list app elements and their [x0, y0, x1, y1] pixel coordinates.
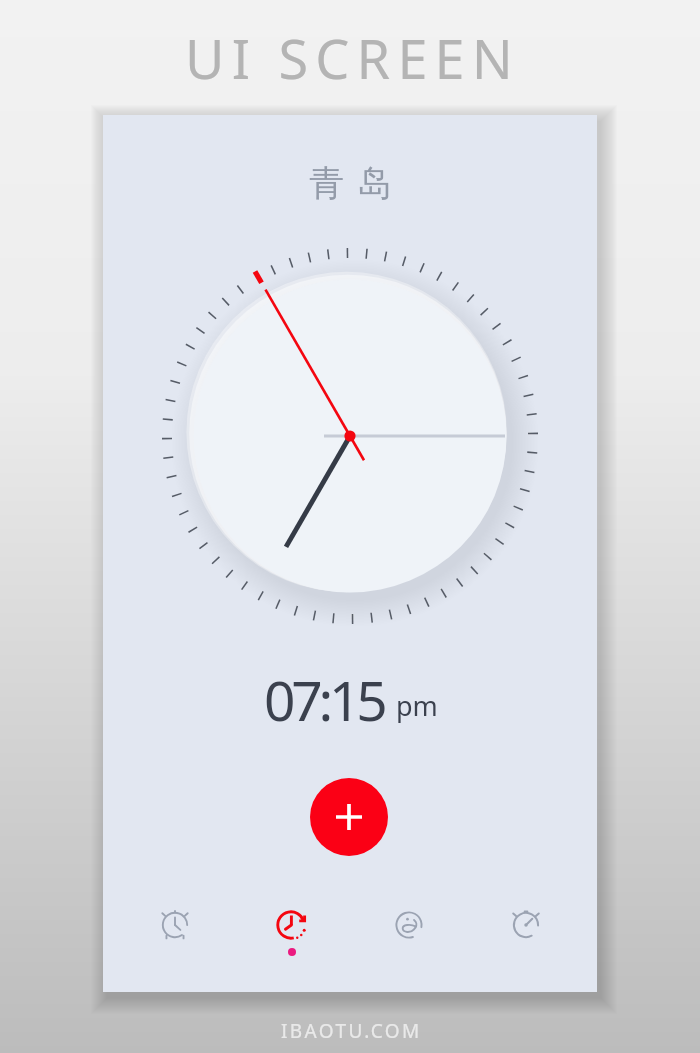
staticText: pm	[396, 687, 438, 724]
staticText: UI SCREEN	[185, 21, 521, 95]
staticText: 07:15	[264, 662, 384, 737]
staticText: IBAOTU.COM	[281, 1018, 422, 1044]
button[interactable]: World clock	[259, 892, 325, 958]
button[interactable]: Add alarm	[310, 778, 388, 856]
button[interactable]: Timer	[376, 892, 442, 958]
button[interactable]: Alarm	[142, 892, 208, 958]
staticText: 青 岛	[309, 158, 395, 206]
button[interactable]: Stopwatch	[493, 892, 559, 958]
